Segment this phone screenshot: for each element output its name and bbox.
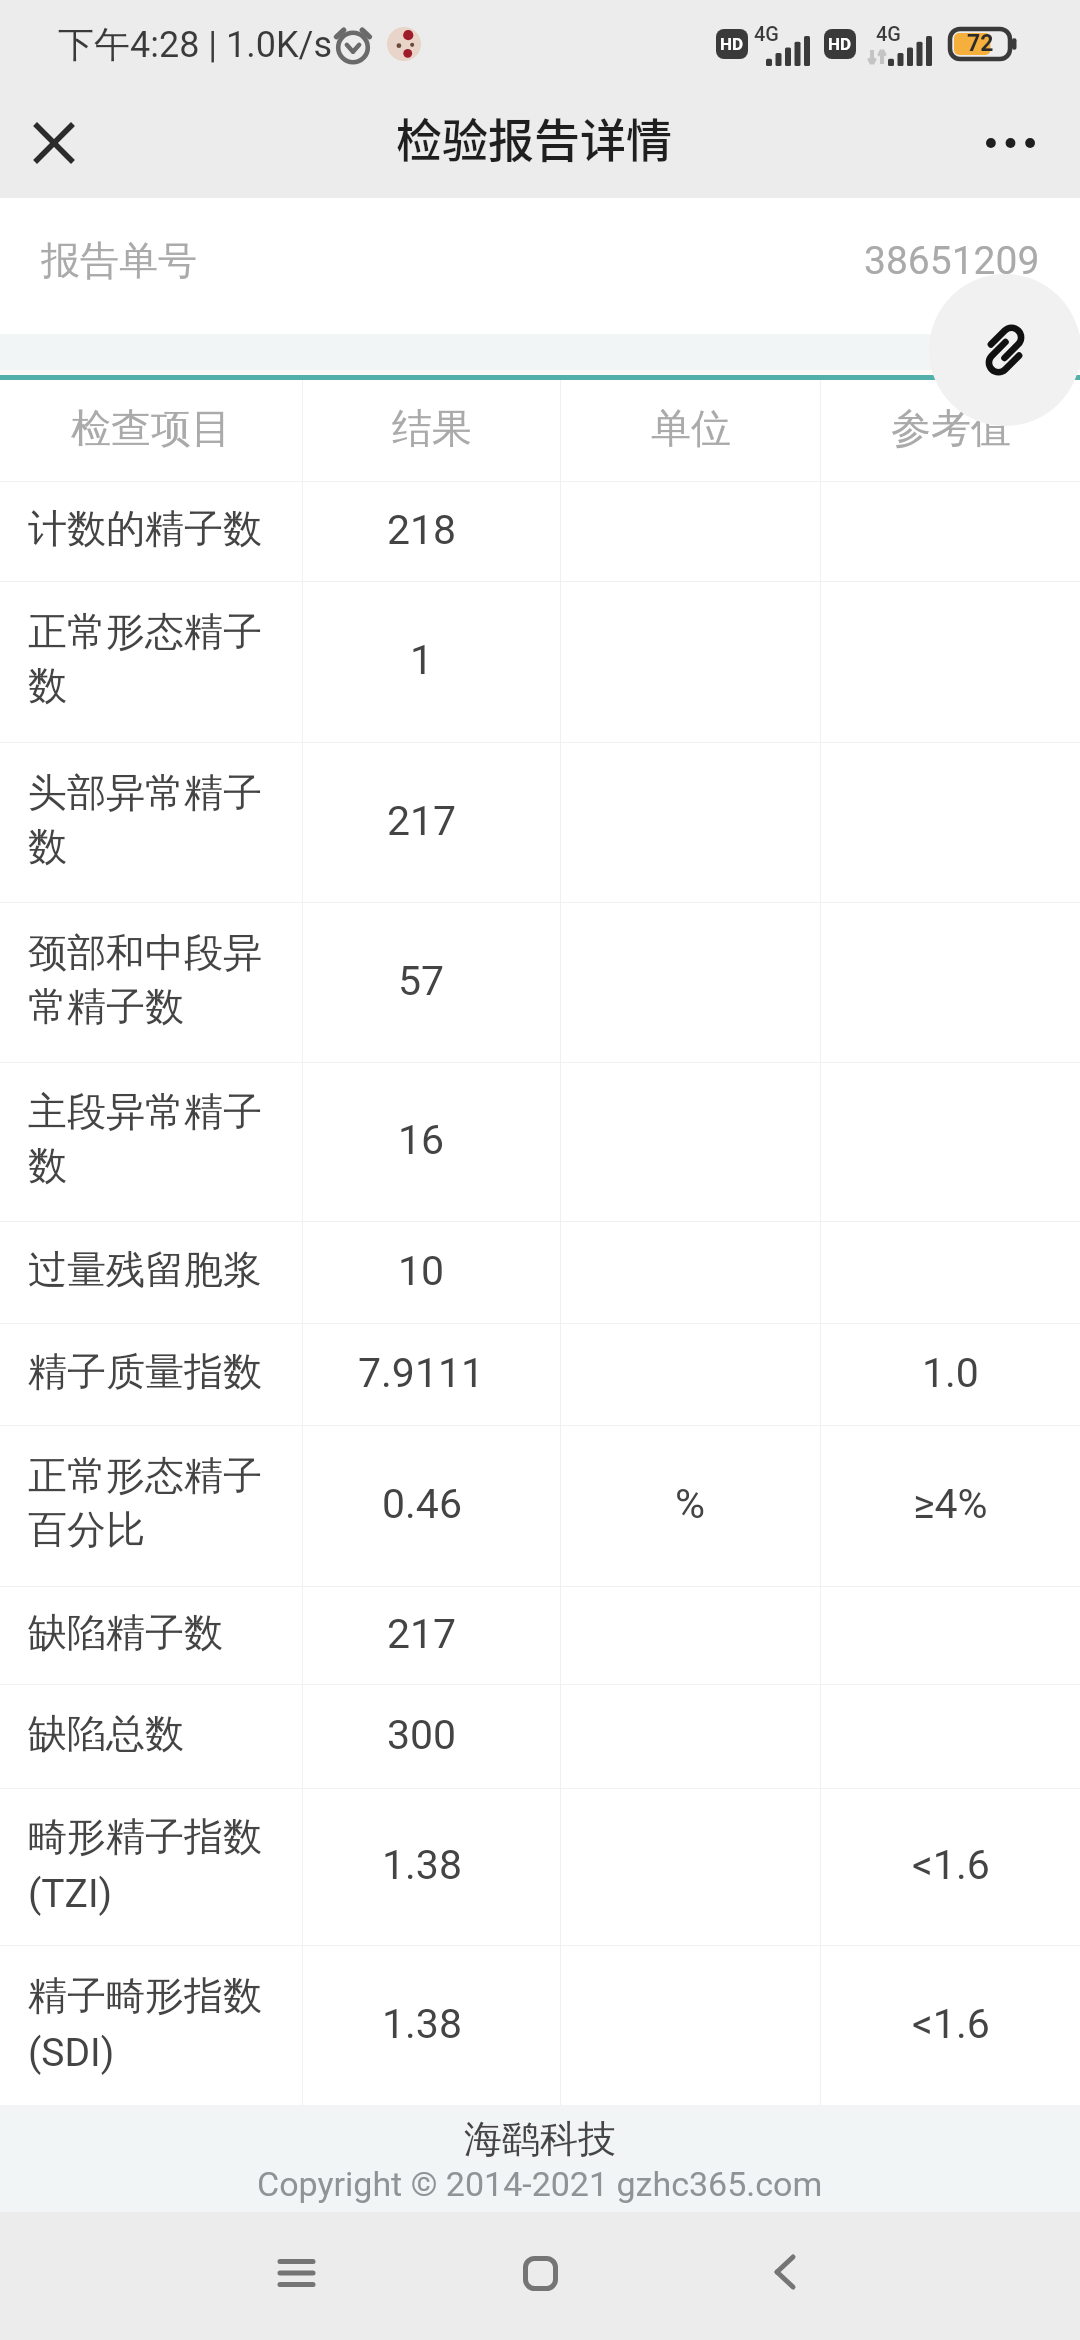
staticText: 主段异常精子 数 — [28, 1087, 262, 1191]
staticText: 300 — [387, 1711, 457, 1759]
staticText: 38651209 — [864, 238, 1040, 284]
staticText: 217 — [387, 797, 457, 845]
staticText: 结果 — [392, 403, 472, 453]
staticText: 海鹞科技 — [464, 2115, 616, 2163]
staticText: 57 — [398, 957, 445, 1005]
staticText: 正常形态精子 百分比 — [28, 1451, 262, 1555]
staticText: 72 — [967, 30, 994, 57]
button[interactable]: Back — [725, 2212, 845, 2340]
staticText: 7.9111 — [358, 1349, 485, 1397]
staticText: 单位 — [651, 403, 731, 453]
staticText: HD — [828, 34, 852, 54]
staticText: 精子畸形指数 (SDI) — [28, 1971, 262, 2075]
staticText: 10 — [398, 1247, 445, 1295]
staticText: 检验报告详情 — [396, 104, 672, 171]
staticText: % — [675, 1480, 706, 1528]
button[interactable]: Copy link — [929, 274, 1080, 426]
staticText: 颈部和中段异 常精子数 — [28, 928, 262, 1032]
staticText: 16 — [398, 1116, 445, 1164]
staticText: 检查项目 — [71, 403, 231, 453]
staticText: 4G — [876, 22, 901, 45]
staticText: 1 — [410, 636, 434, 684]
staticText: 1.0 — [922, 1349, 979, 1397]
staticText: 缺陷总数 — [28, 1709, 184, 1758]
button[interactable]: More options — [976, 109, 1044, 177]
staticText: 1.38 — [382, 2000, 462, 2048]
staticText: 过量残留胞浆 — [28, 1245, 262, 1294]
staticText: HD — [720, 34, 744, 54]
staticText: 218 — [387, 506, 457, 554]
staticText: 下午4:28 | 1.0K/s — [58, 22, 333, 67]
staticText: 畸形精子指数 (TZI) — [28, 1812, 262, 1916]
staticText: 0.46 — [382, 1480, 462, 1528]
staticText: 头部异常精子 数 — [28, 768, 262, 872]
staticText: <1.6 — [912, 2000, 990, 2048]
staticText: ≥4% — [913, 1480, 988, 1528]
staticText: 缺陷精子数 — [28, 1608, 223, 1657]
button[interactable]: Home — [480, 2212, 600, 2340]
button[interactable]: Close — [20, 109, 88, 177]
staticText: Copyright © 2014-2021 gzhc365.com — [257, 2164, 823, 2204]
staticText: 4G — [754, 22, 779, 45]
staticText: <1.6 — [912, 1841, 990, 1889]
staticText: 参考值 — [891, 403, 1011, 453]
staticText: 217 — [387, 1610, 457, 1658]
staticText: 正常形态精子 数 — [28, 607, 262, 711]
staticText: 精子质量指数 — [28, 1347, 262, 1396]
staticText: 报告单号 — [41, 236, 197, 285]
staticText: 1.38 — [382, 1841, 462, 1889]
button[interactable]: Recent apps — [236, 2212, 356, 2340]
staticText: 计数的精子数 — [28, 504, 262, 553]
